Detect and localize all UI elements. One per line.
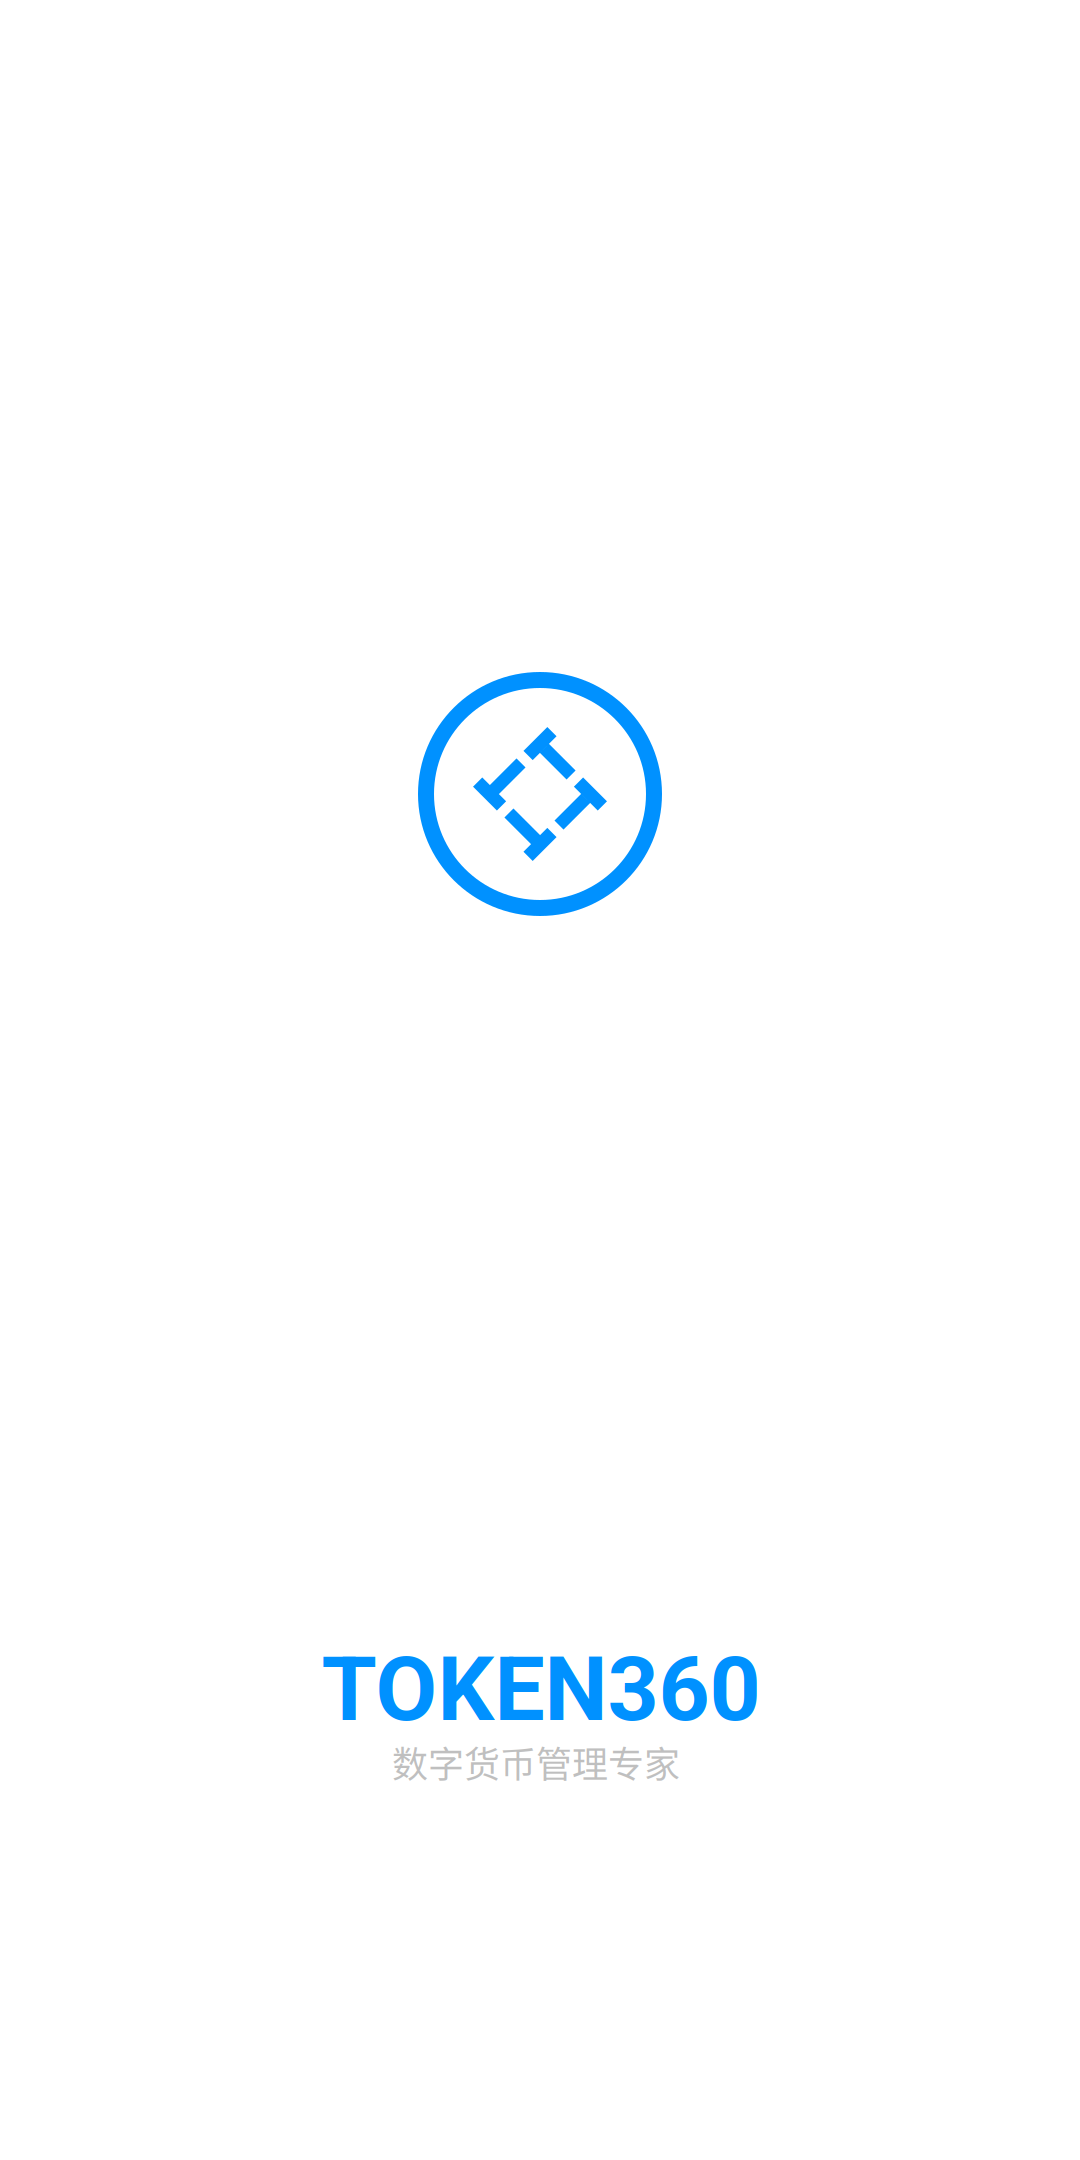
staticText: 数字货币管理专家 — [392, 1736, 680, 1788]
staticText: TOKEN360 — [321, 1637, 760, 1742]
